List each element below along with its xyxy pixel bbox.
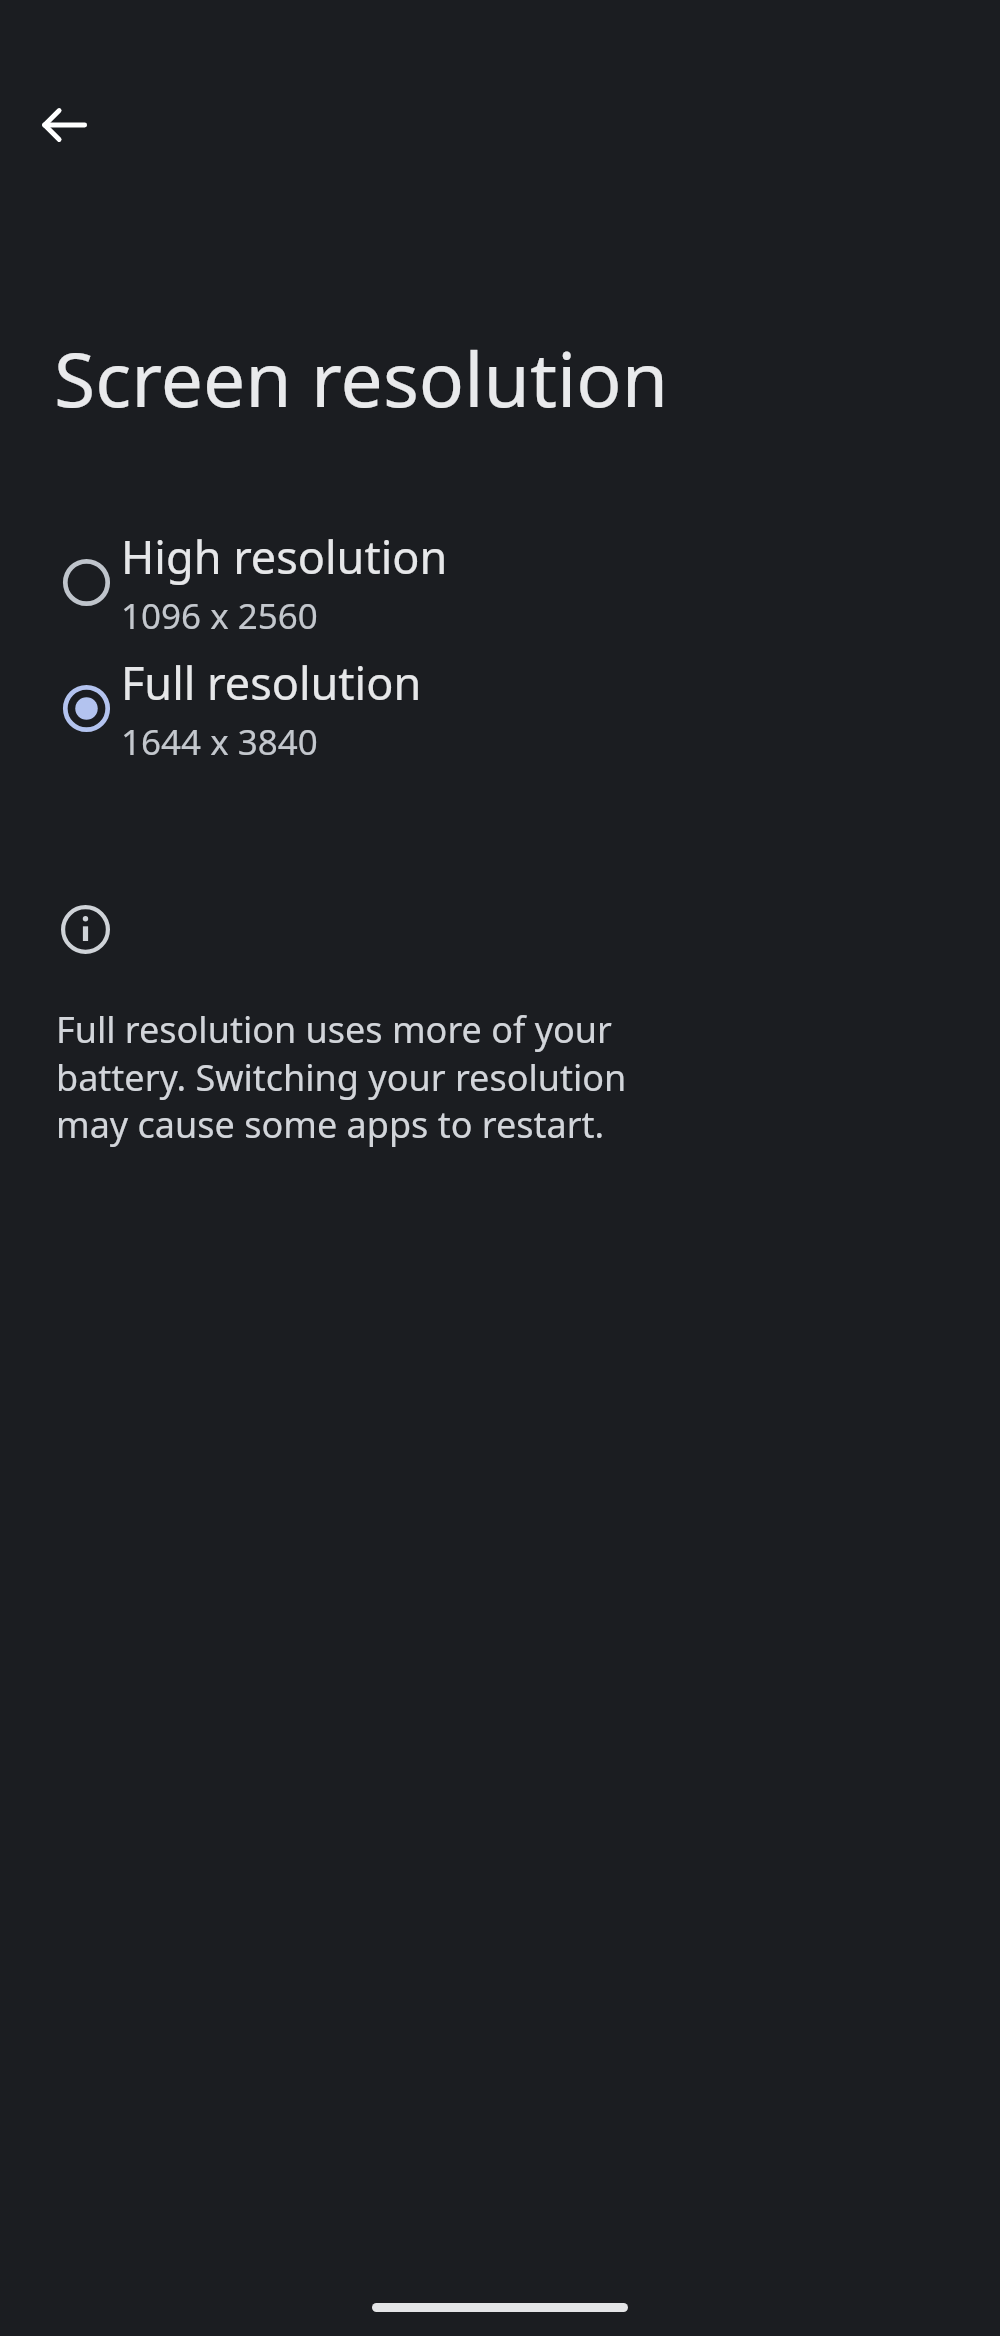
button[interactable]: High resolution: [0, 528, 1000, 654]
staticText: High resolution: [121, 526, 448, 587]
button[interactable]: Full resolution: [0, 654, 1000, 780]
button[interactable]: Back: [18, 79, 110, 171]
staticText: 1644 x 3840: [121, 718, 318, 766]
staticText: Screen resolution: [54, 327, 669, 429]
other: Information: [56, 900, 114, 958]
staticText: Full resolution: [121, 652, 422, 713]
staticText: 1096 x 2560: [121, 592, 318, 640]
staticText: Full resolution uses more of your batter…: [56, 1005, 628, 1148]
